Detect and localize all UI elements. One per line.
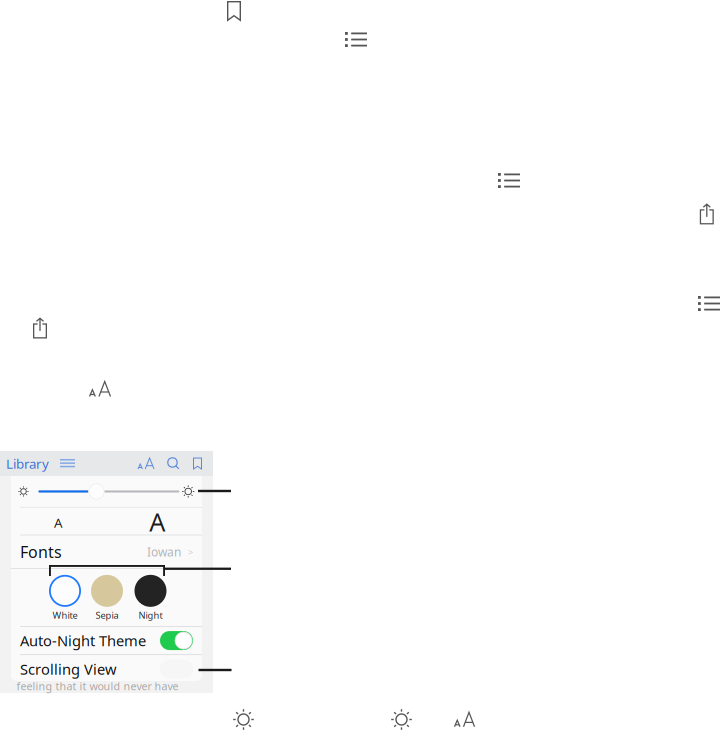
- staticText: Library: [6, 455, 49, 472]
- button[interactable]: Brightness: [232, 708, 254, 730]
- staticText: feeling that it would never have: [16, 679, 178, 693]
- button[interactable]: Text size: [89, 381, 110, 396]
- staticText: Scrolling View: [20, 659, 117, 679]
- staticText: Auto-Night Theme: [20, 631, 146, 650]
- button[interactable]: Bookmark: [227, 1, 241, 21]
- staticText: A: [54, 514, 63, 531]
- button[interactable]: Brightness: [390, 708, 412, 730]
- staticText: Fonts: [20, 541, 62, 562]
- button[interactable]: Share: [700, 203, 714, 224]
- staticText: A: [149, 505, 165, 538]
- staticText: Night: [138, 609, 162, 621]
- staticText: Iowan: [147, 544, 181, 560]
- button[interactable]: Text size: [454, 712, 474, 727]
- staticText: >: [188, 546, 193, 558]
- button[interactable]: Table of Contents: [498, 173, 520, 188]
- button[interactable]: Table of Contents: [345, 32, 367, 47]
- staticText: White: [52, 609, 77, 621]
- button[interactable]: Table of Contents: [698, 296, 720, 311]
- button[interactable]: Share: [33, 317, 47, 338]
- staticText: Sepia: [95, 609, 118, 621]
